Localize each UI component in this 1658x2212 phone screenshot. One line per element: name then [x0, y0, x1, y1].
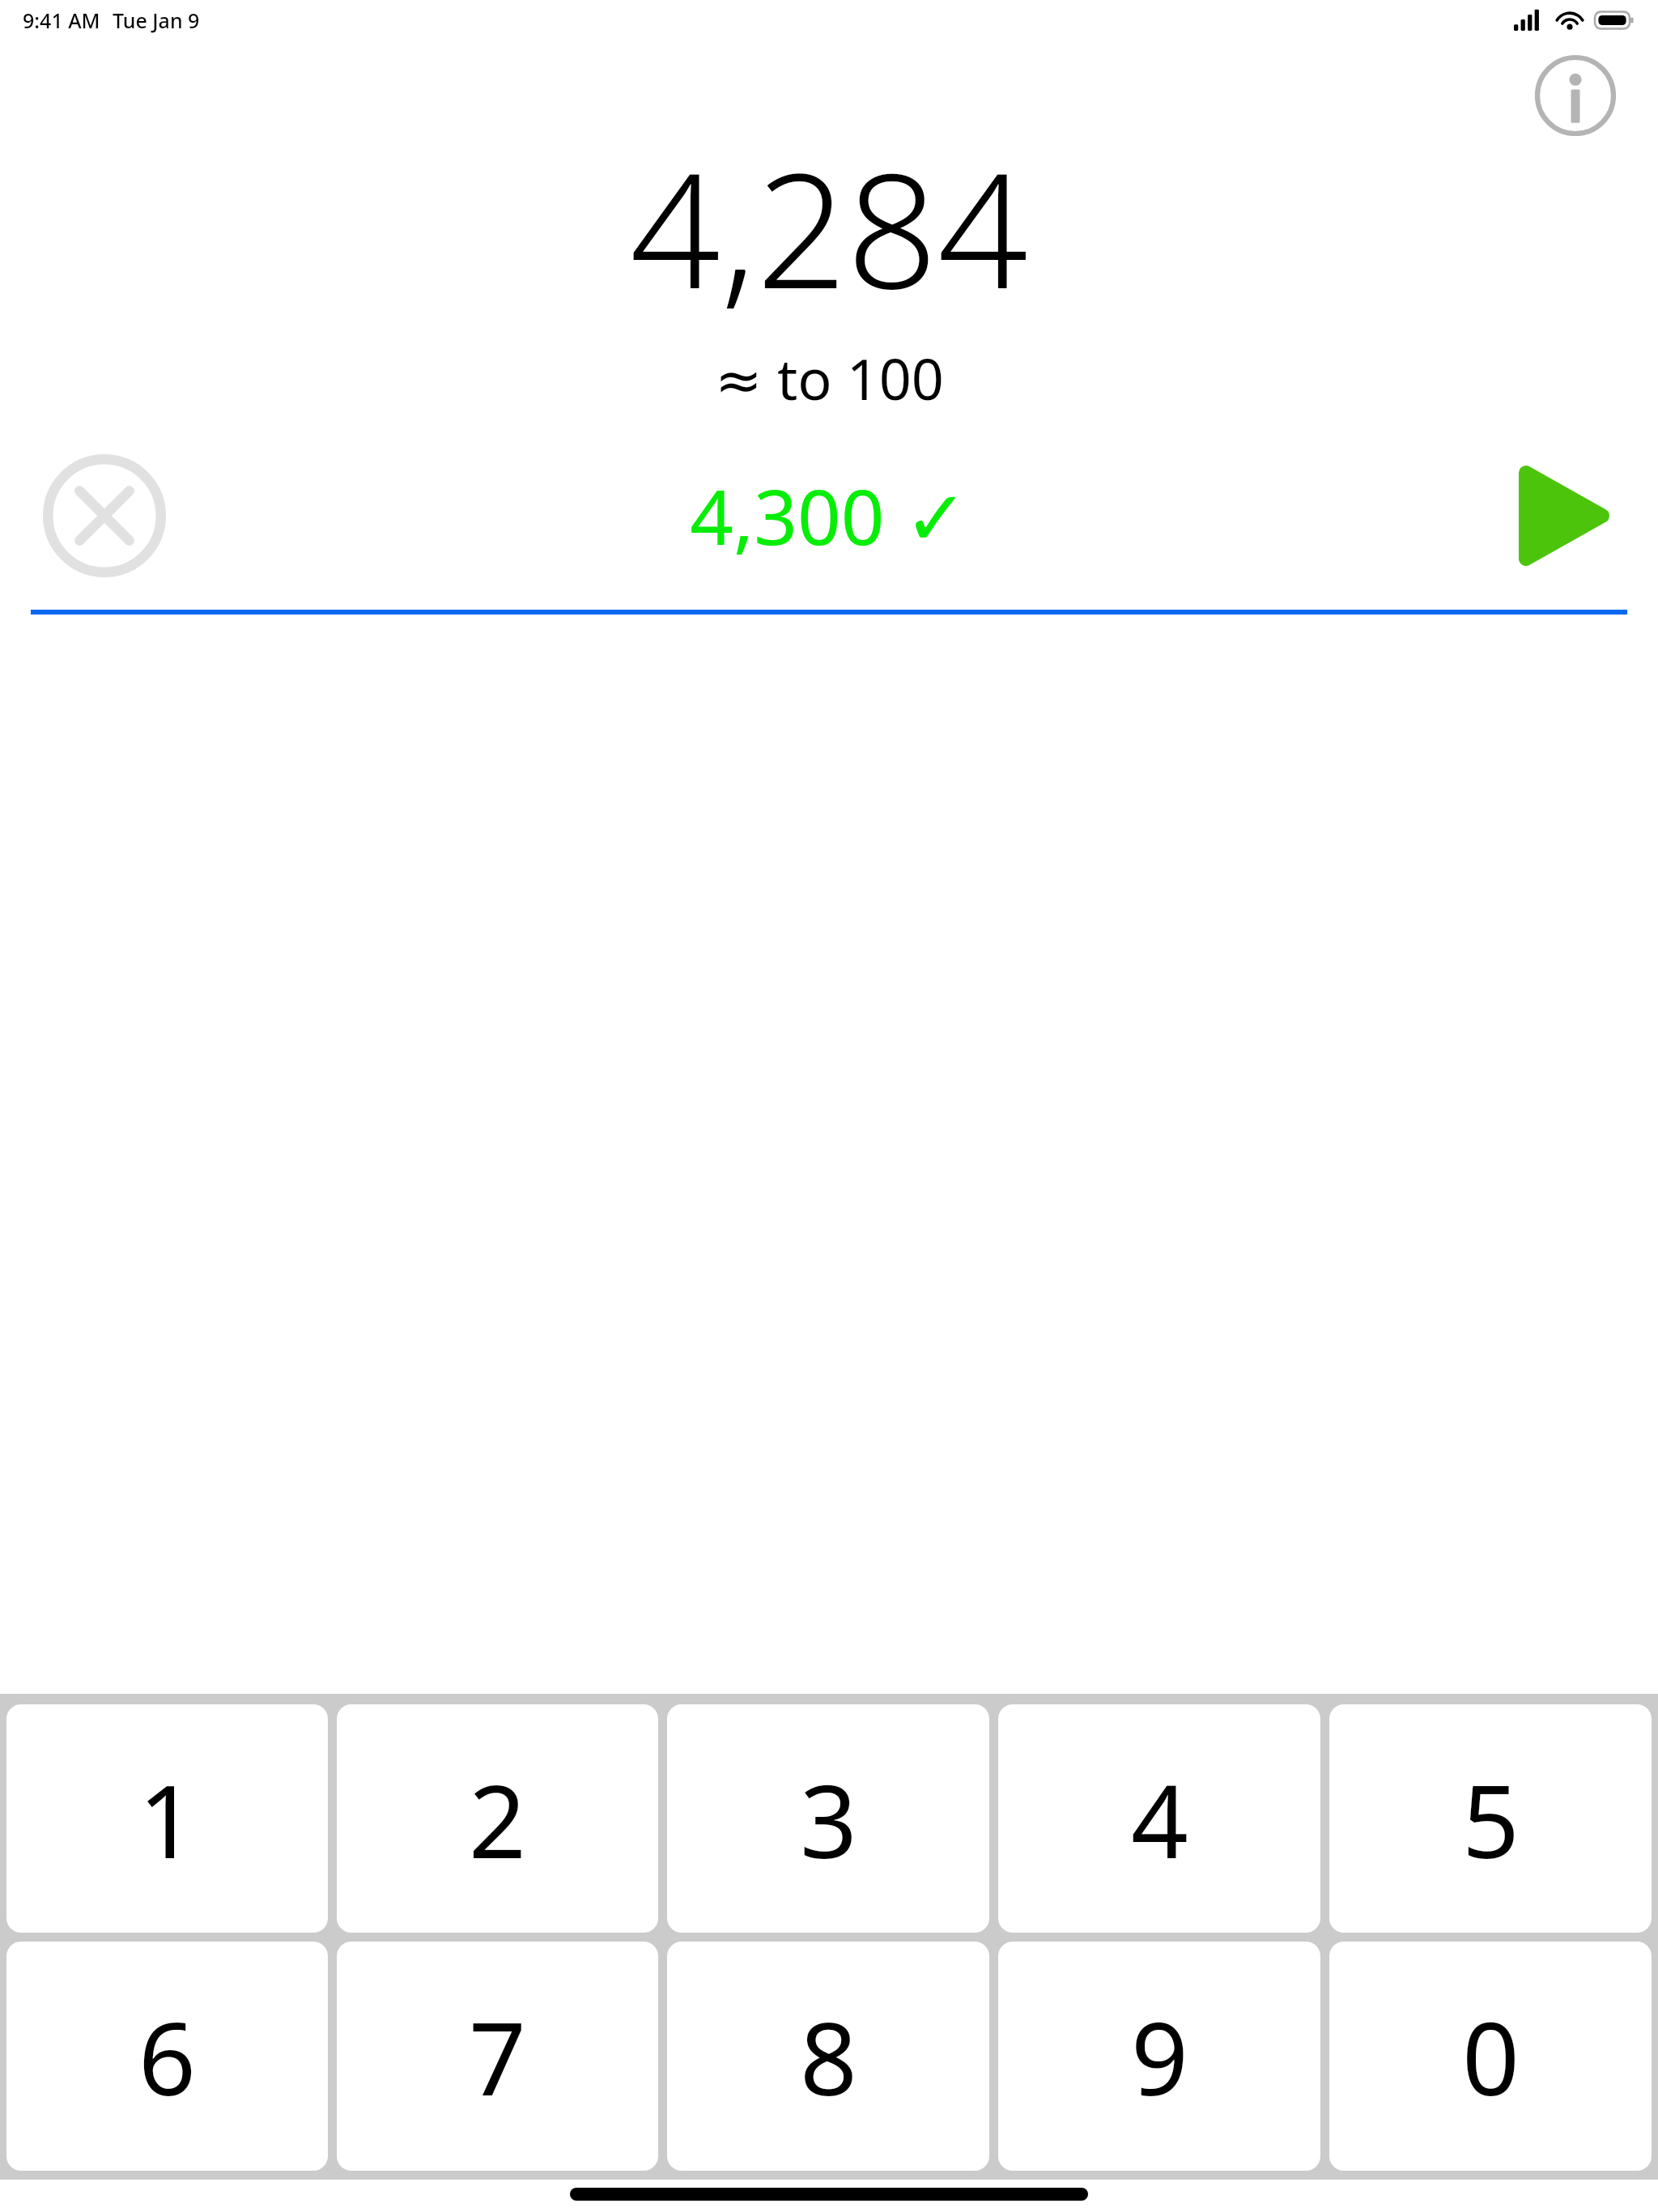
button[interactable]: 2 — [337, 1704, 658, 1933]
button[interactable]: 0 — [1329, 1942, 1652, 2171]
staticText: 4 — [1131, 1750, 1188, 1887]
staticText: 9 — [1131, 1988, 1188, 2125]
staticText: 1 — [138, 1750, 196, 1887]
staticText: 4,300 ✓ — [690, 464, 968, 568]
staticText: 4,284 — [630, 118, 1028, 334]
button[interactable]: 4 — [998, 1704, 1320, 1933]
button[interactable]: 6 — [6, 1942, 328, 2171]
staticText: ≈ to 100 — [715, 339, 944, 416]
button[interactable]: 9 — [998, 1942, 1320, 2171]
staticText: 3 — [800, 1750, 857, 1887]
button[interactable]: 1 — [6, 1704, 328, 1933]
staticText: 7 — [469, 1988, 526, 2125]
staticText: 0 — [1462, 1988, 1520, 2125]
staticText: 6 — [138, 1988, 196, 2125]
button[interactable]: Clear — [32, 450, 176, 581]
staticText: 9:41 AM — [23, 6, 100, 34]
staticText: Tue Jan 9 — [113, 6, 200, 34]
button[interactable]: 7 — [337, 1942, 658, 2171]
button[interactable]: 8 — [667, 1942, 989, 2171]
staticText: 5 — [1462, 1750, 1520, 1887]
button[interactable]: Next — [1509, 461, 1619, 571]
button[interactable]: 3 — [667, 1704, 989, 1933]
staticText: 8 — [800, 1988, 857, 2125]
staticText: 2 — [469, 1750, 526, 1887]
button[interactable]: Info — [1530, 50, 1621, 141]
button[interactable]: 5 — [1329, 1704, 1652, 1933]
